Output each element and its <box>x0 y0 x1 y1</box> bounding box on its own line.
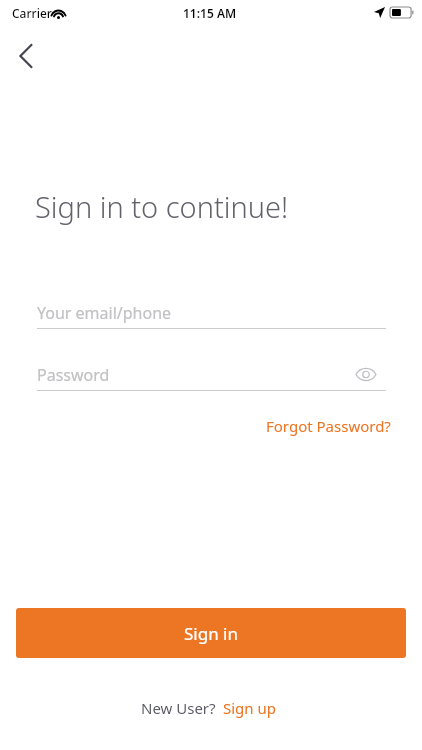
button[interactable]: Show password <box>348 356 384 392</box>
button[interactable]: Forgot Password? <box>258 411 399 441</box>
staticText: Forgot Password? <box>266 416 391 436</box>
staticText: 11:15 AM <box>183 5 237 21</box>
button[interactable]: Back <box>6 36 46 76</box>
button[interactable]: Password <box>37 358 386 391</box>
staticText: Your email/phone <box>37 302 172 324</box>
staticText: Sign up <box>223 698 276 718</box>
staticText: Password <box>37 364 110 386</box>
staticText: Sign in to continue! <box>35 187 289 226</box>
staticText: Carrier <box>12 5 52 21</box>
button[interactable]: Your email/phone <box>37 296 386 329</box>
staticText: New User? <box>141 698 216 718</box>
button[interactable]: Sign in <box>16 608 406 658</box>
button[interactable]: Sign up <box>218 694 281 722</box>
staticText: Sign in <box>184 622 238 645</box>
